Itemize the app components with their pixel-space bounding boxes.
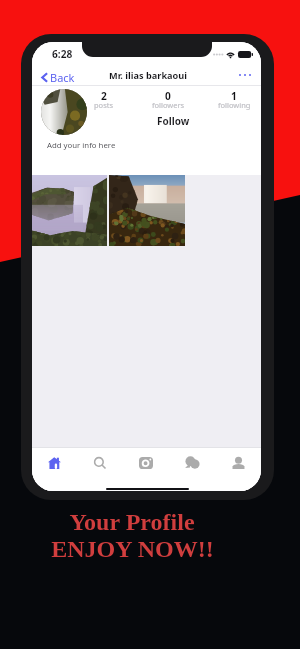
button[interactable]: Profile photo	[41, 89, 87, 135]
button[interactable]: Profile	[215, 447, 261, 478]
staticText: 0	[165, 89, 171, 103]
staticText: 6:28	[52, 47, 73, 61]
staticText: Back	[50, 70, 75, 85]
staticText: 1	[231, 89, 237, 103]
staticText: following	[218, 100, 251, 110]
staticText: ENJOY NOW!!	[51, 536, 214, 563]
button[interactable]: Photo 1	[32, 175, 107, 246]
staticText: Add your info here	[47, 140, 116, 151]
button[interactable]: More options	[232, 67, 258, 83]
staticText: followers	[152, 100, 185, 110]
button[interactable]: Search	[77, 447, 123, 478]
button[interactable]: Photo 2	[109, 175, 185, 246]
staticText: Your Profile	[69, 509, 195, 536]
button[interactable]: Home	[32, 447, 77, 478]
staticText: Mr. ilias barkaoui	[109, 69, 188, 82]
button[interactable]: Messages	[169, 447, 215, 478]
button[interactable]: 1	[204, 89, 261, 113]
button[interactable]: Camera	[123, 447, 169, 478]
staticText: 2	[101, 89, 107, 103]
button[interactable]: 0	[138, 89, 198, 113]
staticText: posts	[94, 100, 114, 110]
button[interactable]: Back	[35, 65, 83, 90]
button[interactable]: Follow	[147, 109, 200, 133]
staticText: Follow	[157, 114, 190, 128]
button[interactable]: 2	[74, 89, 134, 113]
